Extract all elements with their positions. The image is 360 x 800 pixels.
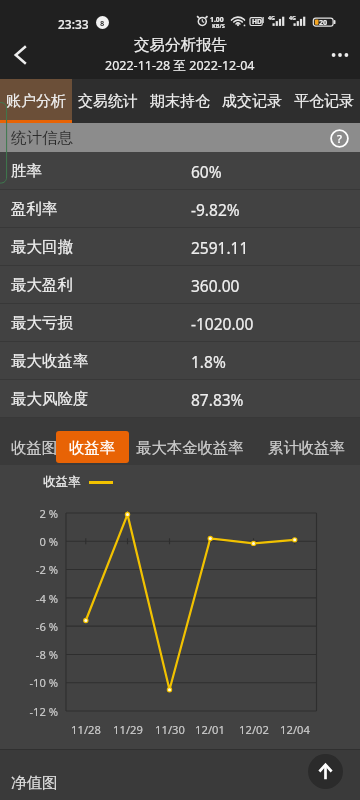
staticText: 4G (289, 14, 296, 21)
staticText: 账户分析 (6, 92, 66, 111)
staticText: 最大盈利 (11, 275, 73, 295)
staticText: 11/30 (155, 722, 185, 737)
staticText: 8 (100, 18, 105, 28)
staticText: 11/28 (71, 722, 101, 737)
staticText: 1.00 (210, 15, 224, 24)
staticText: 盈利率 (11, 199, 58, 219)
staticText: 20 (319, 17, 328, 27)
staticText: 收益图 (11, 438, 58, 456)
staticText: 成交记录 (222, 92, 282, 111)
button[interactable]: Help (327, 126, 351, 150)
staticText: 收益率 (43, 474, 81, 490)
button[interactable]: 胜率 (0, 152, 360, 190)
button[interactable]: 累计收益率 (262, 431, 351, 464)
staticText: 11/29 (113, 722, 143, 737)
button[interactable]: Back (0, 30, 42, 79)
button[interactable]: 最大回撤 (0, 228, 360, 266)
button[interactable]: 最大亏损 (0, 304, 360, 342)
button[interactable]: 期末持仓 (144, 79, 216, 123)
button[interactable]: Scroll to top (308, 754, 343, 789)
staticText: 12/02 (239, 722, 269, 737)
staticText: 最大回撤 (11, 237, 73, 257)
staticText: -9.82% (191, 199, 240, 220)
button[interactable]: 成交记录 (216, 79, 288, 123)
staticText: 交易分析报告 (134, 35, 227, 55)
staticText: 交易统计 (78, 92, 138, 111)
staticText: 最大本金收益率 (136, 438, 244, 457)
staticText: -8 % (35, 647, 58, 662)
staticText: -12 % (29, 704, 58, 719)
staticText: 最大亏损 (11, 313, 73, 333)
staticText: -6 % (35, 619, 58, 634)
staticText: -1020.00 (191, 313, 254, 334)
button[interactable]: 账户分析 (0, 79, 72, 123)
staticText: KB/S (212, 22, 225, 30)
button[interactable]: 最大收益率 (0, 342, 360, 380)
button[interactable]: 最大盈利 (0, 266, 360, 304)
staticText: 0 % (39, 534, 58, 549)
staticText: 最大风险度 (11, 389, 89, 409)
staticText: -10 % (29, 675, 58, 690)
staticText: 12/04 (280, 722, 310, 737)
staticText: 23:33 (58, 16, 89, 32)
staticText: 360.00 (191, 275, 240, 296)
staticText: 4G (268, 14, 275, 21)
staticText: 最大收益率 (11, 351, 89, 371)
staticText: 2 % (39, 506, 58, 521)
staticText: 统计信息 (11, 128, 73, 148)
staticText: -2 % (35, 562, 58, 577)
staticText: 净值图 (11, 773, 58, 793)
button[interactable]: 最大风险度 (0, 380, 360, 418)
staticText: 收益率 (69, 438, 116, 457)
staticText: 胜率 (11, 161, 42, 181)
button[interactable]: 盈利率 (0, 190, 360, 228)
staticText: 期末持仓 (150, 92, 210, 111)
staticText: -4 % (35, 591, 58, 606)
button[interactable]: 收益率 (56, 431, 129, 463)
staticText: 87.83% (191, 389, 244, 410)
staticText: HD (252, 17, 262, 26)
button[interactable]: 收益图 (5, 431, 64, 463)
button[interactable]: 交易统计 (72, 79, 144, 123)
staticText: 1.8% (191, 351, 226, 372)
staticText: ? (337, 131, 342, 146)
staticText: 2022-11-28 至 2022-12-04 (105, 57, 255, 74)
staticText: 平仓记录 (294, 92, 354, 111)
button[interactable]: More options (320, 30, 360, 79)
staticText: 12/01 (195, 722, 225, 737)
staticText: 2591.11 (191, 237, 249, 258)
staticText: 60% (191, 161, 222, 182)
staticText: 累计收益率 (268, 438, 345, 457)
button[interactable]: 平仓记录 (288, 79, 360, 123)
button[interactable]: 最大本金收益率 (130, 431, 250, 464)
